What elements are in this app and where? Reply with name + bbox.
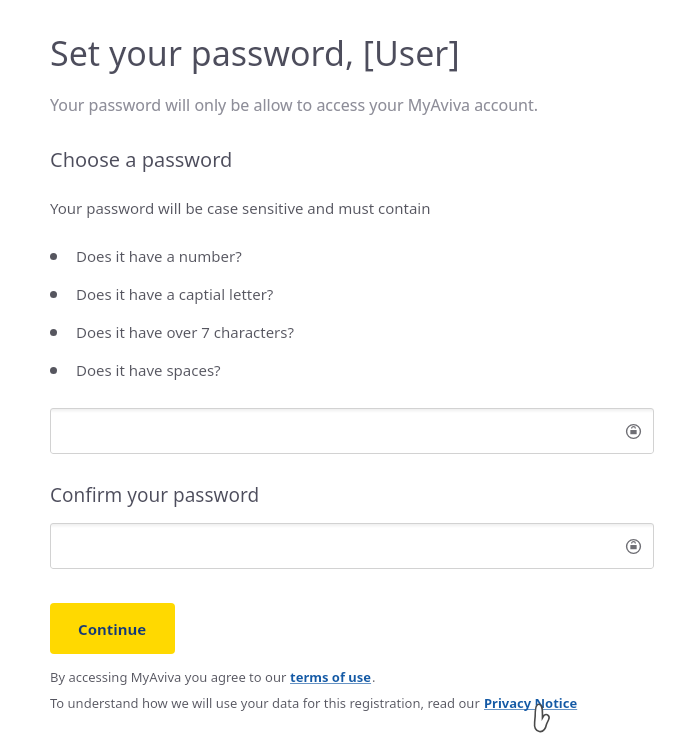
button[interactable]: Password entry field [50, 523, 654, 569]
button[interactable]: Password entry field [50, 408, 654, 454]
staticText: Your password will be case sensitive and… [50, 198, 431, 218]
staticText: Privacy Notice [484, 694, 578, 712]
staticText: Your password will only be allow to acce… [50, 94, 539, 116]
button[interactable]: Privacy Notice [484, 694, 578, 712]
button[interactable]: Continue [50, 603, 175, 654]
button[interactable]: Show password [624, 422, 642, 440]
staticText: Does it have over 7 characters? [76, 322, 295, 342]
staticText: Set your password, [User] [50, 30, 460, 76]
staticText: terms of use [290, 668, 372, 686]
staticText: Does it have a captial letter? [76, 284, 274, 304]
staticText: Choose a password [50, 146, 233, 173]
staticText: By accessing MyAviva you agree to our [50, 668, 290, 686]
staticText: To understand how we will use your data … [50, 694, 484, 712]
staticText: Does it have a number? [76, 246, 242, 266]
staticText: Continue [78, 619, 147, 639]
staticText: . [372, 668, 376, 686]
button[interactable]: Show password [624, 537, 642, 555]
button[interactable]: terms of use [290, 668, 372, 686]
staticText: Does it have spaces? [76, 360, 221, 380]
staticText: Confirm your password [50, 482, 260, 508]
